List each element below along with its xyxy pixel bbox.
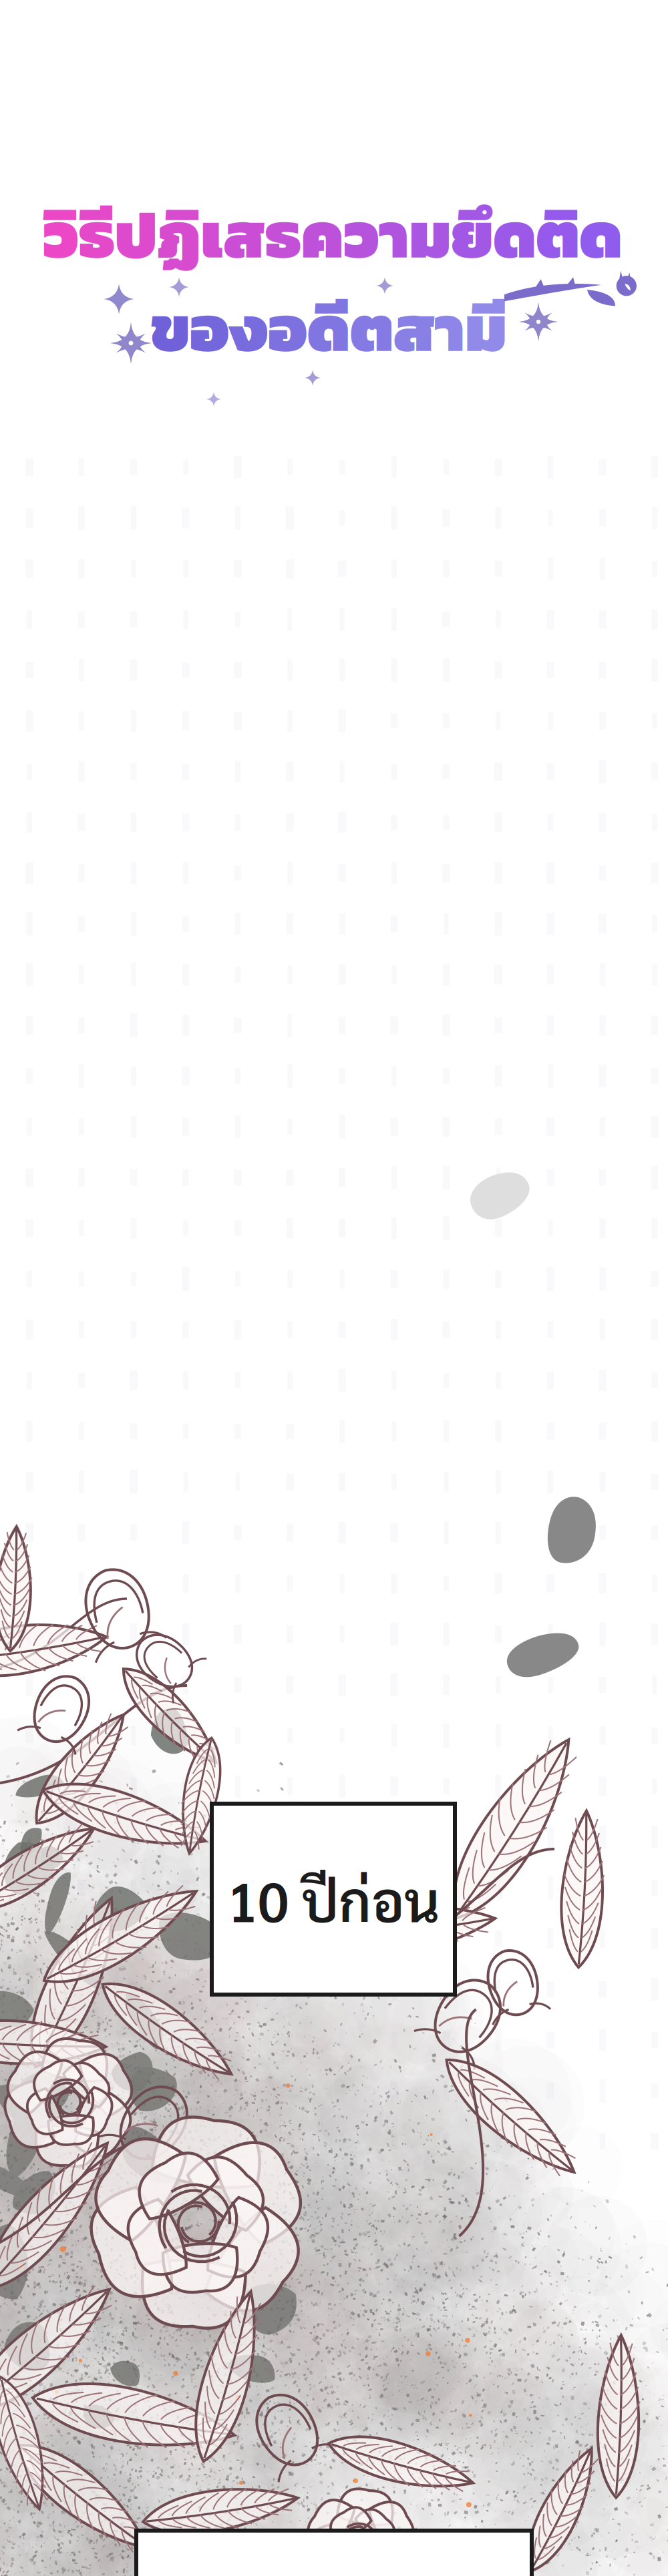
staticText: ค [301,187,344,283]
staticText: ด [493,187,536,283]
staticText: ส [393,280,435,376]
staticText: ข [150,280,190,376]
staticText: ดี [307,280,350,376]
staticText: ป [115,187,157,283]
staticText: ฏิ [157,187,201,283]
staticText: มี [465,280,507,376]
staticText: ธ [265,187,301,283]
staticText: อ [268,280,307,376]
staticText: ม [409,187,451,283]
staticText: า [379,187,409,283]
staticText: ติ [536,187,579,283]
staticText: 10 ปีก่อน [227,1863,440,1935]
staticText: ส [223,187,265,283]
staticText: วิ [43,187,78,283]
staticText: ธี [78,187,115,283]
staticText: เ [201,187,223,283]
staticText: ง [229,280,268,376]
staticText: า [435,280,465,376]
staticText: ยึ [451,187,493,283]
staticText: อ [190,280,229,376]
staticText: ว [344,187,379,283]
staticText: ต [350,280,393,376]
staticText: ด [579,187,622,283]
